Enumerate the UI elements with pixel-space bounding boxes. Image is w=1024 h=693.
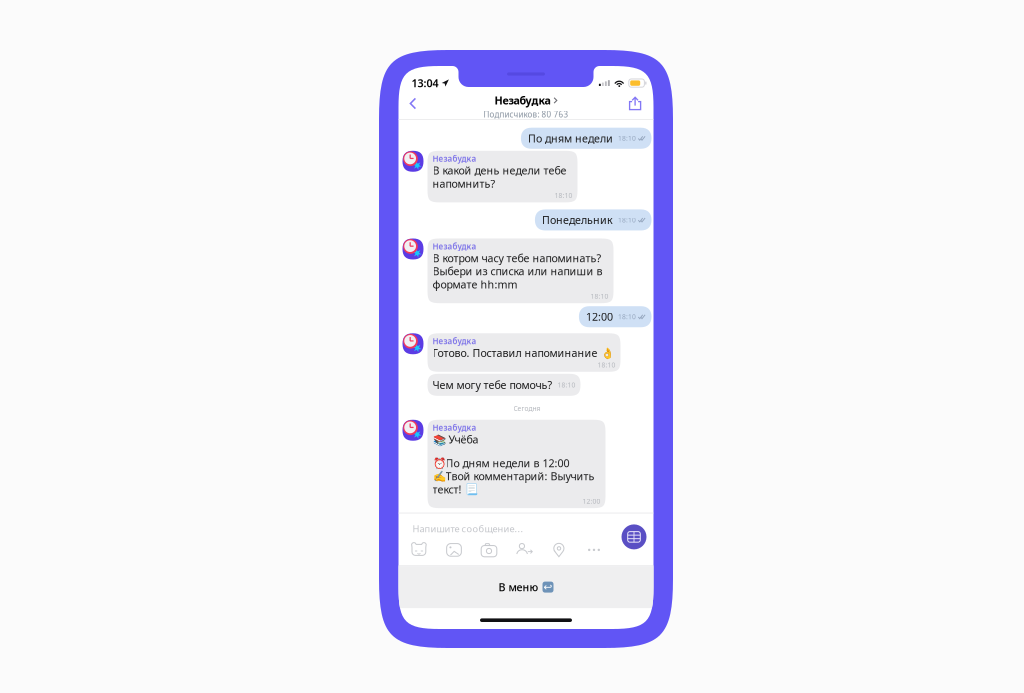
staticText: Незабудка (432, 241, 476, 252)
button[interactable]: Keyboard (621, 513, 653, 549)
staticText: Незабудка (432, 153, 476, 164)
button[interactable]: Location (541, 541, 576, 558)
staticText: 13:04 (411, 76, 438, 90)
staticText: Подписчиков: 80 763 (483, 109, 568, 120)
button[interactable]: Back (398, 89, 430, 118)
button[interactable]: Незабудка (475, 84, 576, 123)
staticText: 18:10 (597, 360, 615, 369)
staticText: В котром часу тебе напоминать? Выбери из… (432, 252, 602, 291)
staticText: 18:10 (554, 191, 572, 200)
staticText: Понедельник (542, 213, 613, 226)
staticText: Чем могу тебе помочь? (432, 378, 552, 391)
staticText: Незабудка (432, 336, 476, 346)
staticText: 18:10 (590, 292, 608, 301)
button[interactable]: More (576, 541, 611, 558)
staticText: ↩ (543, 581, 552, 593)
staticText: Сегодня (513, 404, 540, 413)
button[interactable]: В меню (398, 566, 653, 608)
staticText: В какой день недели тебе напомнить? (432, 164, 566, 190)
staticText: 📚 Учёба (432, 433, 478, 446)
staticText: В меню (498, 580, 538, 594)
button[interactable]: Camera (471, 541, 506, 558)
staticText: По дням недели (528, 132, 613, 145)
staticText: 12:00 (586, 310, 613, 323)
staticText: Напишите сообщение... (412, 522, 523, 535)
staticText: ⏰По дням недели в 12:00 (432, 457, 569, 470)
staticText: Незабудка (432, 422, 476, 433)
staticText: ✍️Твой комментарий: Выучить текст! 📃 (432, 470, 594, 496)
staticText: 18:10 (557, 380, 575, 389)
staticText: 12:00 (582, 497, 600, 506)
staticText: Незабудка (495, 93, 551, 108)
staticText: Готово. Поставил напоминание 👌 (432, 346, 613, 359)
button[interactable]: Photo (436, 541, 471, 558)
staticText: 18:10 (618, 134, 636, 143)
staticText: 18:10 (618, 312, 636, 321)
button[interactable]: Invite (506, 541, 541, 558)
button[interactable]: Sticker (401, 541, 436, 558)
button[interactable]: Share (615, 88, 653, 119)
staticText: 18:10 (618, 215, 636, 224)
